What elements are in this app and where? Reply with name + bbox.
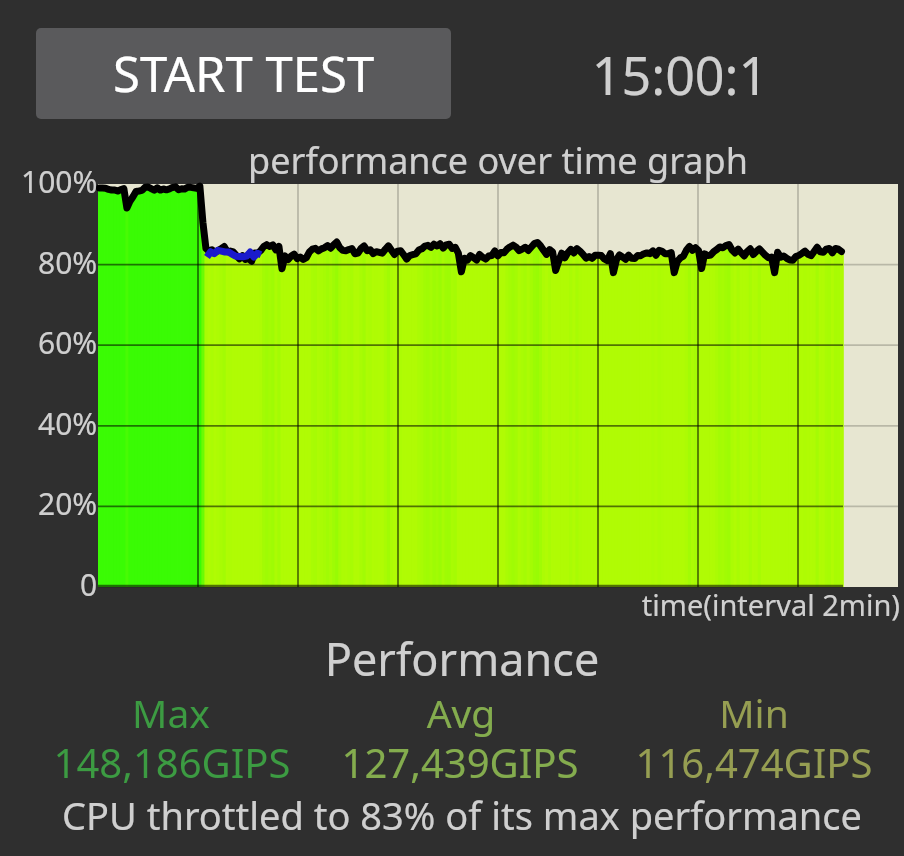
staticText: 100% xyxy=(21,161,98,202)
staticText: 148,186GIPS xyxy=(0,735,572,789)
staticText: CPU throttled to 83% of its max performa… xyxy=(62,789,862,841)
staticText: 80% xyxy=(38,242,98,283)
staticText: START TEST xyxy=(113,40,375,107)
staticText: 20% xyxy=(38,483,98,524)
staticText: 40% xyxy=(38,403,98,444)
staticText: Performance xyxy=(62,628,862,689)
button[interactable]: START TEST xyxy=(36,28,451,119)
staticText: 127,439GIPS xyxy=(60,735,860,789)
button[interactable]: Performance over time graph xyxy=(0,184,904,587)
staticText: performance over time graph xyxy=(98,136,898,185)
staticText: Max xyxy=(0,686,571,739)
staticText: 0 xyxy=(80,564,98,605)
staticText: Min xyxy=(354,686,904,739)
staticText: time(interval 2min) xyxy=(0,585,900,624)
staticText: 116,474GIPS xyxy=(354,735,904,789)
staticText: 15:00:1 xyxy=(280,39,904,110)
staticText: 60% xyxy=(38,322,98,363)
staticText: Avg xyxy=(61,686,861,739)
